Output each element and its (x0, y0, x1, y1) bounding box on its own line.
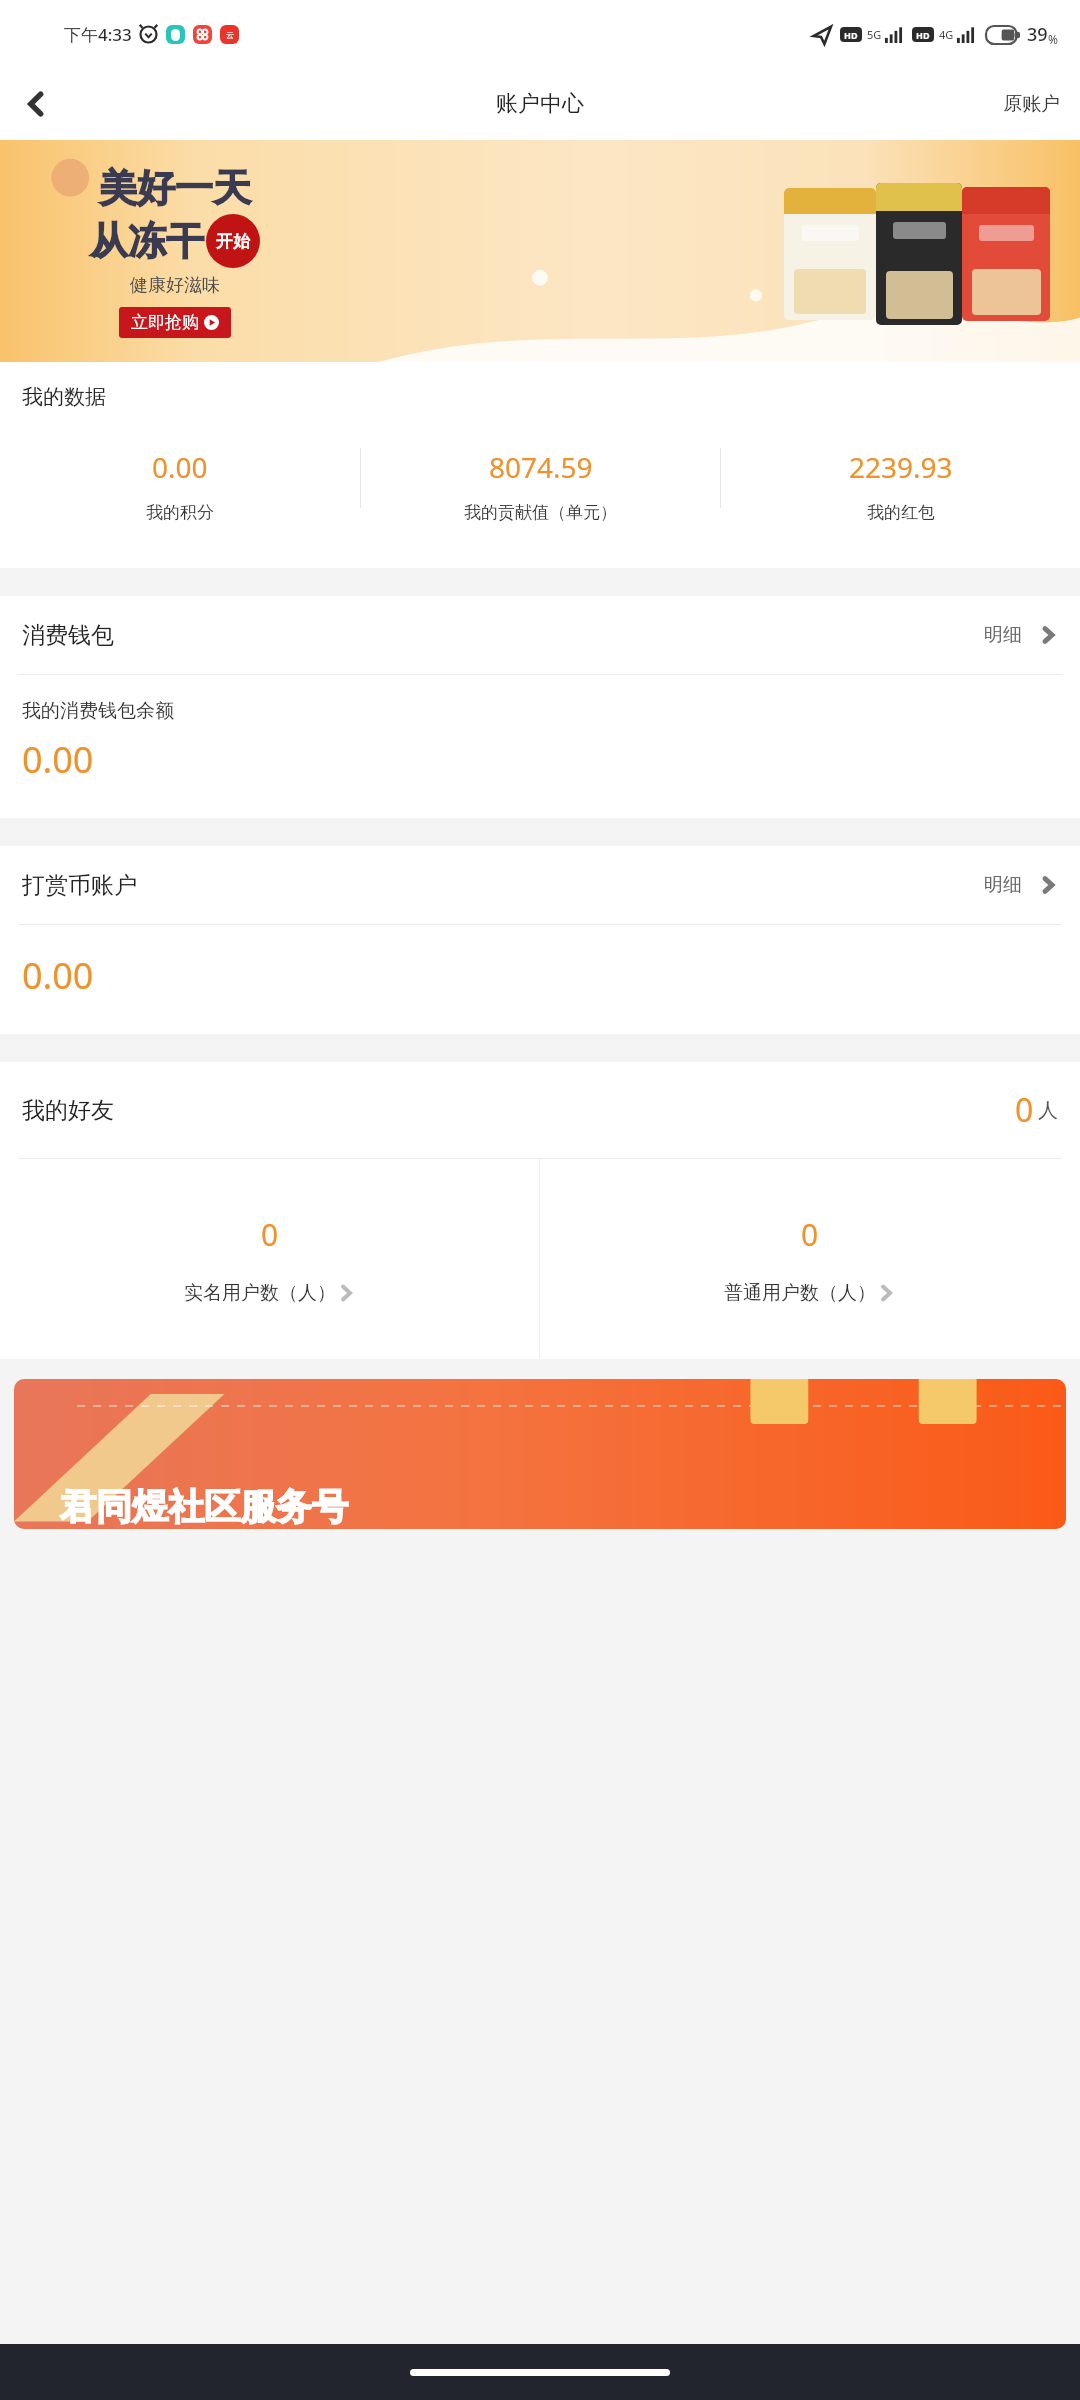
staticText: 健康好滋味 (130, 274, 220, 297)
staticText: 我的积分 (146, 502, 214, 523)
staticText: 0 (261, 1214, 279, 1255)
staticText: 8074.59 (489, 448, 593, 486)
staticText: 我的红包 (867, 502, 935, 523)
staticText: 美好一天 (99, 164, 251, 212)
button[interactable]: 君同煜社区服务号 (14, 1379, 1066, 1529)
staticText: 君同煜社区服务号 (60, 1484, 348, 1529)
staticText: 下午4:33 (64, 23, 132, 46)
staticText: 我的消费钱包余额 (22, 699, 174, 723)
staticText: 打赏币账户 (22, 871, 137, 900)
button[interactable]: 消费钱包 (0, 596, 1080, 674)
staticText: 我的数据 (22, 384, 106, 410)
staticText: 我的好友 (22, 1096, 114, 1125)
button[interactable]: 立即抢购 (131, 312, 219, 333)
staticText: % (1048, 31, 1058, 47)
button[interactable]: 0 (540, 1159, 1080, 1359)
staticText: 原账户 (1003, 92, 1060, 116)
button[interactable]: 2239.93 (721, 448, 1080, 540)
staticText: 39 (1027, 22, 1048, 47)
staticText: 0.00 (22, 735, 94, 784)
staticText: 我的贡献值（单元） (464, 502, 617, 523)
staticText: 实名用户数（人） (184, 1281, 336, 1305)
button[interactable]: 我的好友 (0, 1062, 1080, 1158)
staticText: 账户中心 (496, 90, 584, 118)
staticText: 2239.93 (849, 448, 953, 486)
button[interactable]: 返回 (0, 68, 72, 140)
staticText: HD (844, 29, 858, 41)
staticText: 0 (1015, 1088, 1034, 1132)
staticText: 0.00 (152, 448, 208, 486)
staticText: 明细 (984, 623, 1022, 647)
button[interactable]: 原账户 (983, 68, 1080, 140)
staticText: 立即抢购 (131, 312, 199, 333)
staticText: 普通用户数（人） (724, 1281, 876, 1305)
staticText: HD (916, 29, 930, 41)
staticText: 5G (867, 27, 882, 42)
staticText: 从冻干 (90, 217, 204, 265)
staticText: 消费钱包 (22, 621, 114, 650)
staticText: 0 (801, 1214, 819, 1255)
staticText: 4G (939, 27, 954, 42)
button[interactable]: 0.00 (0, 448, 360, 540)
button[interactable]: 0 (0, 1159, 539, 1359)
staticText: 开始 (216, 231, 250, 252)
button[interactable]: 打赏币账户 (0, 846, 1080, 924)
staticText: 云 (226, 30, 234, 40)
staticText: 明细 (984, 873, 1022, 897)
button[interactable]: 8074.59 (361, 448, 720, 540)
staticText: 人 (1038, 1098, 1058, 1123)
staticText: 0.00 (22, 951, 94, 1000)
button[interactable]: 美好一天 (0, 140, 1080, 362)
